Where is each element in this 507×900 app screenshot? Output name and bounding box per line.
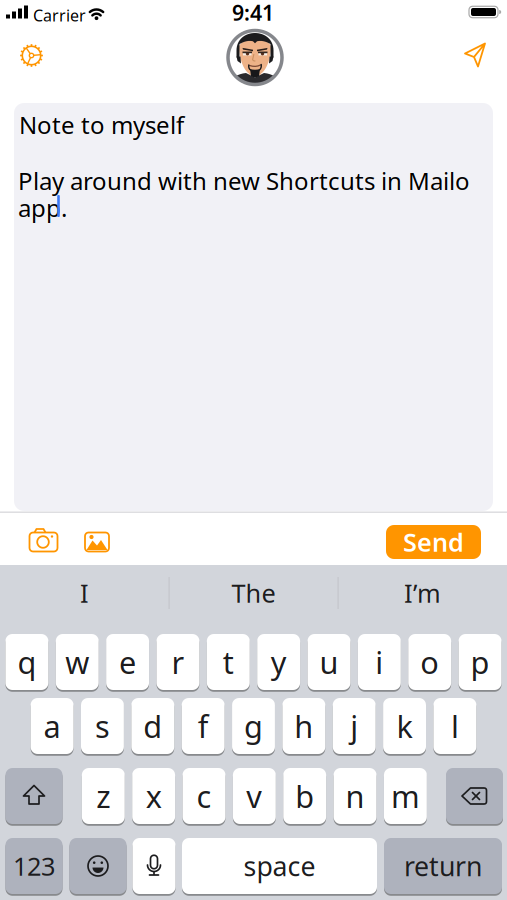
staticText: s xyxy=(95,706,110,746)
staticText: The xyxy=(231,576,275,610)
button[interactable]: w xyxy=(56,634,99,690)
staticText: h xyxy=(294,706,313,746)
staticText: i xyxy=(375,642,383,682)
button[interactable]: Send message xyxy=(454,33,498,77)
staticText: g xyxy=(244,706,263,746)
staticText: r xyxy=(171,642,184,682)
staticText: b xyxy=(295,776,314,816)
button[interactable]: c xyxy=(183,768,225,824)
button[interactable]: b xyxy=(283,768,326,824)
button[interactable]: Delete xyxy=(446,768,503,824)
staticText: p xyxy=(471,642,490,682)
staticText: I xyxy=(80,576,89,610)
staticText: k xyxy=(397,706,413,746)
button[interactable]: return xyxy=(384,838,502,894)
staticText: 123 xyxy=(13,849,55,883)
button[interactable]: m xyxy=(384,768,427,824)
staticText: n xyxy=(346,776,365,816)
button[interactable]: h xyxy=(282,698,325,754)
staticText: e xyxy=(119,642,136,682)
button[interactable]: p xyxy=(459,634,501,690)
staticText: Send xyxy=(403,525,464,559)
staticText: v xyxy=(246,776,262,816)
button[interactable]: Settings xyxy=(9,33,53,77)
button[interactable]: y xyxy=(257,634,300,690)
staticText: c xyxy=(196,776,211,816)
button[interactable]: e xyxy=(106,634,149,690)
staticText: q xyxy=(17,642,36,682)
button[interactable]: x xyxy=(132,768,175,824)
staticText: 9:41 xyxy=(232,0,274,27)
button[interactable]: v xyxy=(233,768,276,824)
button[interactable]: d xyxy=(131,698,174,754)
staticText: t xyxy=(223,642,234,682)
button[interactable]: l xyxy=(433,698,476,754)
button[interactable]: I’m xyxy=(342,569,502,617)
button[interactable]: q xyxy=(5,634,48,690)
staticText: y xyxy=(271,642,287,682)
staticText: l xyxy=(451,706,459,746)
button[interactable]: n xyxy=(334,768,376,824)
staticText: d xyxy=(143,706,162,746)
staticText: u xyxy=(319,642,338,682)
button[interactable]: r xyxy=(156,634,199,690)
button[interactable]: Photo Library xyxy=(77,523,117,559)
button[interactable]: k xyxy=(383,698,426,754)
button[interactable]: Dictate xyxy=(132,838,175,894)
staticText: Carrier xyxy=(33,5,86,26)
staticText: j xyxy=(350,706,358,746)
button[interactable]: 123 xyxy=(5,838,62,894)
button[interactable]: Profile xyxy=(228,30,282,84)
button[interactable]: s xyxy=(81,698,124,754)
staticText: Play around with new Shortcuts in Mailo xyxy=(18,165,470,197)
staticText: Note to myself xyxy=(19,109,184,141)
button[interactable]: Emoji xyxy=(69,838,126,894)
button[interactable]: f xyxy=(182,698,225,754)
staticText: w xyxy=(65,642,89,682)
staticText: x xyxy=(146,776,162,816)
button[interactable]: Shift xyxy=(5,768,62,824)
button[interactable]: z xyxy=(82,768,125,824)
staticText: f xyxy=(198,706,209,746)
staticText: return xyxy=(404,848,482,884)
button[interactable]: u xyxy=(308,634,350,690)
staticText: o xyxy=(420,642,439,682)
button[interactable]: Send xyxy=(386,525,481,559)
button[interactable]: o xyxy=(408,634,451,690)
button[interactable]: The xyxy=(173,569,333,617)
staticText: app. xyxy=(18,192,67,224)
button[interactable]: a xyxy=(31,698,74,754)
staticText: m xyxy=(391,776,420,816)
button[interactable]: t xyxy=(207,634,250,690)
button[interactable]: g xyxy=(232,698,275,754)
staticText: I’m xyxy=(404,576,441,610)
button[interactable]: I xyxy=(4,569,164,617)
button[interactable]: space xyxy=(182,838,377,894)
staticText: z xyxy=(96,776,110,816)
button[interactable]: Camera xyxy=(21,523,65,559)
staticText: space xyxy=(243,848,315,884)
button[interactable]: j xyxy=(333,698,376,754)
button[interactable]: i xyxy=(358,634,401,690)
staticText: a xyxy=(44,706,61,746)
